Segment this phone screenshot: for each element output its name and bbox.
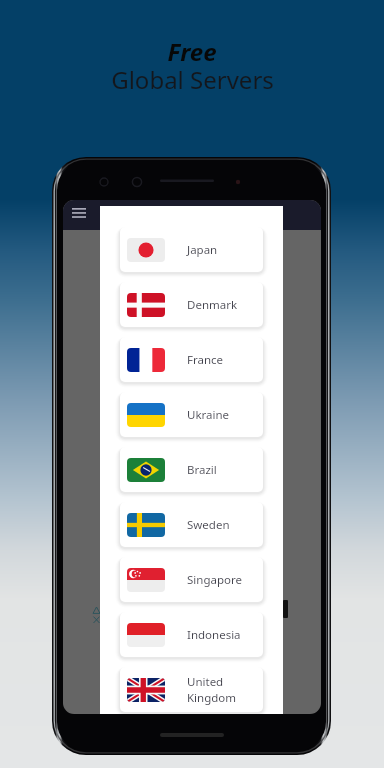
staticText: Denmark [187, 297, 238, 313]
staticText: Ukraine [187, 407, 230, 423]
staticText: France [187, 352, 224, 368]
staticText: United Kingdom [187, 674, 237, 705]
button[interactable]: Menu [72, 208, 86, 218]
staticText: Brazil [187, 462, 217, 478]
staticText: Singapore [187, 572, 242, 588]
staticText: Japan [187, 242, 218, 258]
staticText: Global Servers [111, 63, 274, 96]
button[interactable]: United Kingdom [120, 667, 263, 712]
staticText: Indonesia [187, 627, 241, 643]
button[interactable]: Indonesia [120, 612, 263, 657]
staticText: Sweden [187, 517, 230, 533]
button[interactable]: Denmark [120, 282, 263, 327]
staticText: Free [167, 35, 217, 68]
button[interactable]: Singapore [120, 557, 263, 602]
button[interactable]: France [120, 337, 263, 382]
button[interactable]: Sweden [120, 502, 263, 547]
button[interactable]: Brazil [120, 447, 263, 492]
button[interactable]: Japan [120, 227, 263, 272]
button[interactable]: Ukraine [120, 392, 263, 437]
